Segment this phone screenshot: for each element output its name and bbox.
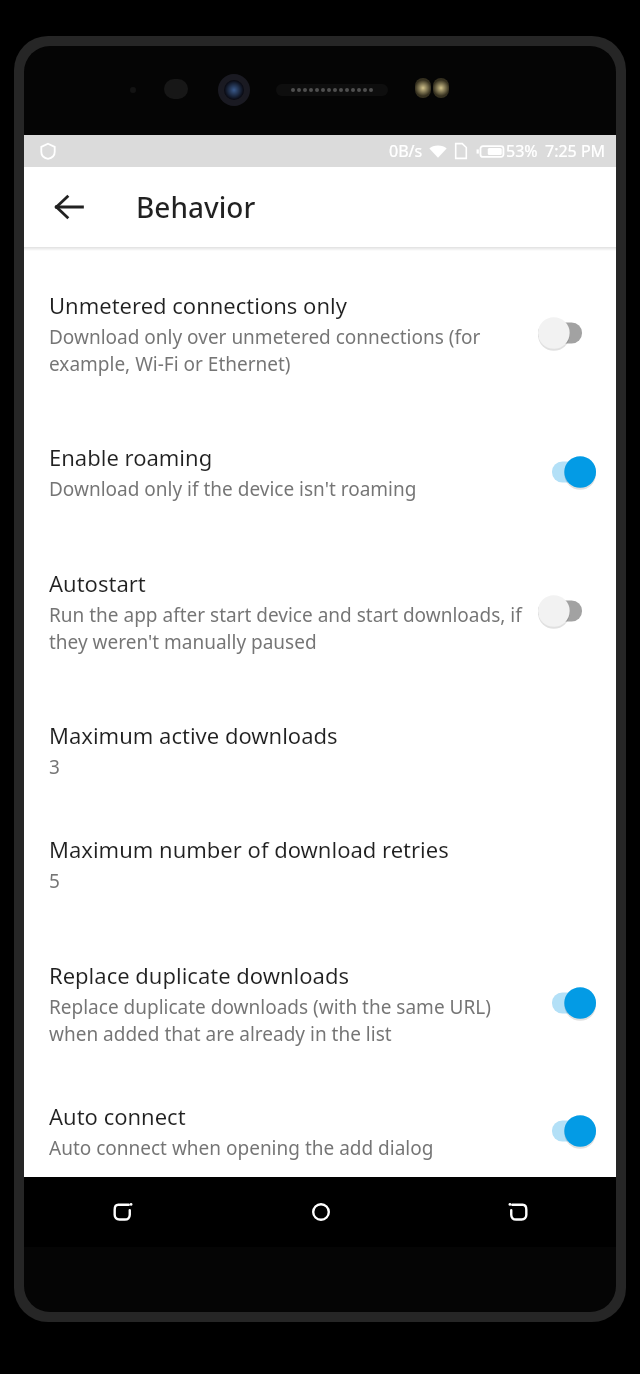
staticText: 3 xyxy=(49,754,60,780)
staticText: Auto connect xyxy=(49,1101,186,1131)
button[interactable]: Enable roaming xyxy=(24,415,616,529)
staticText: Maximum active downloads xyxy=(49,720,338,750)
button[interactable]: Maximum active downloads xyxy=(24,693,616,807)
button[interactable]: Back xyxy=(419,1177,616,1247)
staticText: Replace duplicate downloads (with the sa… xyxy=(49,994,526,1047)
staticText: Behavior xyxy=(136,188,256,226)
staticText: 7:25 PM xyxy=(545,140,606,162)
staticText: Run the app after start device and start… xyxy=(49,602,526,655)
button[interactable]: Auto connect xyxy=(24,1085,616,1177)
staticText: Autostart xyxy=(49,568,146,598)
button[interactable]: Off xyxy=(538,315,596,351)
button[interactable]: Unmetered connections only xyxy=(24,251,616,415)
staticText: Download only if the device isn't roamin… xyxy=(49,476,417,502)
staticText: Download only over unmetered connections… xyxy=(49,324,526,377)
staticText: 5 xyxy=(49,868,60,894)
button[interactable]: On xyxy=(538,454,596,490)
button[interactable]: Off xyxy=(538,593,596,629)
button[interactable]: On xyxy=(538,1113,596,1149)
staticText: Enable roaming xyxy=(49,442,213,472)
staticText: Unmetered connections only xyxy=(49,290,347,320)
staticText: 53% xyxy=(506,140,538,162)
staticText: Auto connect when opening the add dialog xyxy=(49,1135,434,1161)
staticText: Maximum number of download retries xyxy=(49,834,449,864)
button[interactable]: Home xyxy=(222,1177,419,1247)
staticText: Replace duplicate downloads xyxy=(49,960,349,990)
button[interactable]: Replace duplicate downloads xyxy=(24,921,616,1085)
button[interactable]: Autostart xyxy=(24,529,616,693)
staticText: 0B/s xyxy=(389,140,423,162)
button[interactable]: Maximum number of download retries xyxy=(24,807,616,921)
button[interactable]: Back xyxy=(38,176,100,238)
button[interactable]: Recents xyxy=(24,1177,222,1247)
button[interactable]: On xyxy=(538,985,596,1021)
